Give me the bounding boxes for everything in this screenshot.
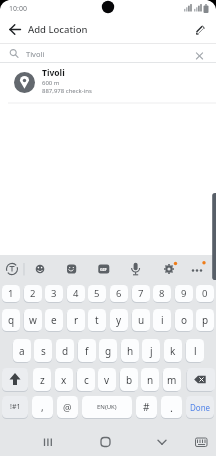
staticText: 3 — [51, 287, 57, 300]
staticText: i — [161, 313, 164, 327]
button[interactable] — [2, 368, 28, 391]
staticText: 0 — [202, 287, 208, 300]
button[interactable]: !#1 — [2, 396, 28, 418]
button[interactable]: q — [2, 309, 20, 331]
button[interactable] — [0, 44, 216, 63]
staticText: Tivoli — [26, 49, 45, 59]
staticText: h — [127, 344, 134, 358]
button[interactable] — [150, 430, 174, 454]
button[interactable]: . — [161, 396, 182, 418]
button[interactable] — [4, 258, 20, 280]
staticText: , — [41, 400, 44, 414]
button[interactable]: g — [99, 339, 117, 362]
button[interactable]: h — [121, 339, 139, 362]
button[interactable]: l — [186, 339, 204, 362]
button[interactable]: m — [163, 368, 181, 391]
button[interactable]: b — [120, 368, 138, 391]
staticText: GIF — [100, 267, 107, 272]
staticText: q — [8, 313, 15, 327]
button[interactable] — [192, 430, 212, 454]
staticText: a — [19, 344, 25, 358]
staticText: 1 — [8, 287, 14, 300]
staticText: 600 m — [42, 79, 60, 87]
button[interactable]: f — [78, 339, 96, 362]
button[interactable]: Done — [186, 396, 214, 418]
button[interactable]: 3 — [45, 285, 63, 302]
staticText: u — [138, 313, 145, 327]
button[interactable]: 8 — [153, 285, 171, 302]
button[interactable] — [36, 430, 60, 454]
staticText: 6 — [116, 287, 122, 300]
button[interactable]: 2 — [24, 285, 42, 302]
button[interactable]: z — [33, 368, 51, 391]
button[interactable]: p — [196, 309, 214, 331]
button[interactable]: r — [67, 309, 85, 331]
button[interactable] — [189, 258, 205, 280]
button[interactable] — [33, 258, 49, 280]
button[interactable]: y — [110, 309, 128, 331]
staticText: j — [150, 344, 153, 358]
button[interactable] — [64, 258, 80, 280]
button[interactable]: # — [136, 396, 157, 418]
button[interactable] — [96, 258, 112, 280]
button[interactable]: 1 — [2, 285, 20, 302]
button[interactable]: EN(UK) — [82, 396, 132, 418]
button[interactable]: t — [88, 309, 106, 331]
button[interactable] — [187, 368, 215, 391]
button[interactable]: 4 — [67, 285, 85, 302]
button[interactable]: i — [153, 309, 171, 331]
button[interactable] — [93, 430, 117, 454]
button[interactable]: 7 — [132, 285, 150, 302]
staticText: p — [202, 313, 209, 327]
button[interactable]: d — [56, 339, 74, 362]
button[interactable]: u — [132, 309, 150, 331]
button[interactable]: , — [32, 396, 53, 418]
button[interactable] — [190, 46, 210, 62]
button[interactable]: s — [34, 339, 52, 362]
staticText: n — [147, 373, 154, 387]
button[interactable]: e — [45, 309, 63, 331]
button[interactable]: 0 — [196, 285, 214, 302]
staticText: 887,978 check-ins — [42, 87, 92, 95]
staticText: w — [29, 313, 37, 327]
staticText: 5 — [94, 287, 100, 300]
staticText: k — [170, 344, 176, 358]
staticText: . — [170, 400, 173, 415]
button[interactable]: o — [175, 309, 193, 331]
button[interactable] — [0, 16, 216, 44]
button[interactable]: w — [24, 309, 42, 331]
button[interactable]: @ — [57, 396, 78, 418]
button[interactable] — [128, 258, 144, 280]
staticText: Tivoli — [42, 67, 65, 79]
button[interactable]: 6 — [110, 285, 128, 302]
staticText: 4 — [73, 287, 79, 300]
button[interactable]: n — [141, 368, 159, 391]
staticText: y — [116, 313, 122, 327]
staticText: r — [74, 313, 79, 327]
staticText: z — [40, 373, 45, 387]
button[interactable]: j — [142, 339, 160, 362]
staticText: Done — [190, 402, 211, 413]
button[interactable]: k — [164, 339, 182, 362]
staticText: s — [41, 344, 46, 358]
button[interactable]: c — [77, 368, 95, 391]
button[interactable]: 5 — [88, 285, 106, 302]
staticText: @ — [63, 401, 72, 414]
staticText: 8 — [159, 287, 165, 300]
button[interactable]: x — [55, 368, 73, 391]
staticText: c — [84, 373, 89, 387]
staticText: f — [85, 344, 89, 358]
button[interactable]: a — [13, 339, 31, 362]
button[interactable] — [0, 63, 216, 103]
staticText: EN(UK) — [97, 403, 117, 411]
staticText: x — [61, 373, 67, 387]
button[interactable]: v — [98, 368, 116, 391]
staticText: m — [167, 373, 177, 387]
staticText: d — [62, 344, 69, 358]
staticText: e — [51, 313, 57, 327]
button[interactable]: 9 — [175, 285, 193, 302]
button[interactable] — [190, 20, 212, 42]
button[interactable] — [161, 258, 177, 280]
staticText: # — [143, 400, 150, 414]
staticText: l — [194, 344, 197, 358]
